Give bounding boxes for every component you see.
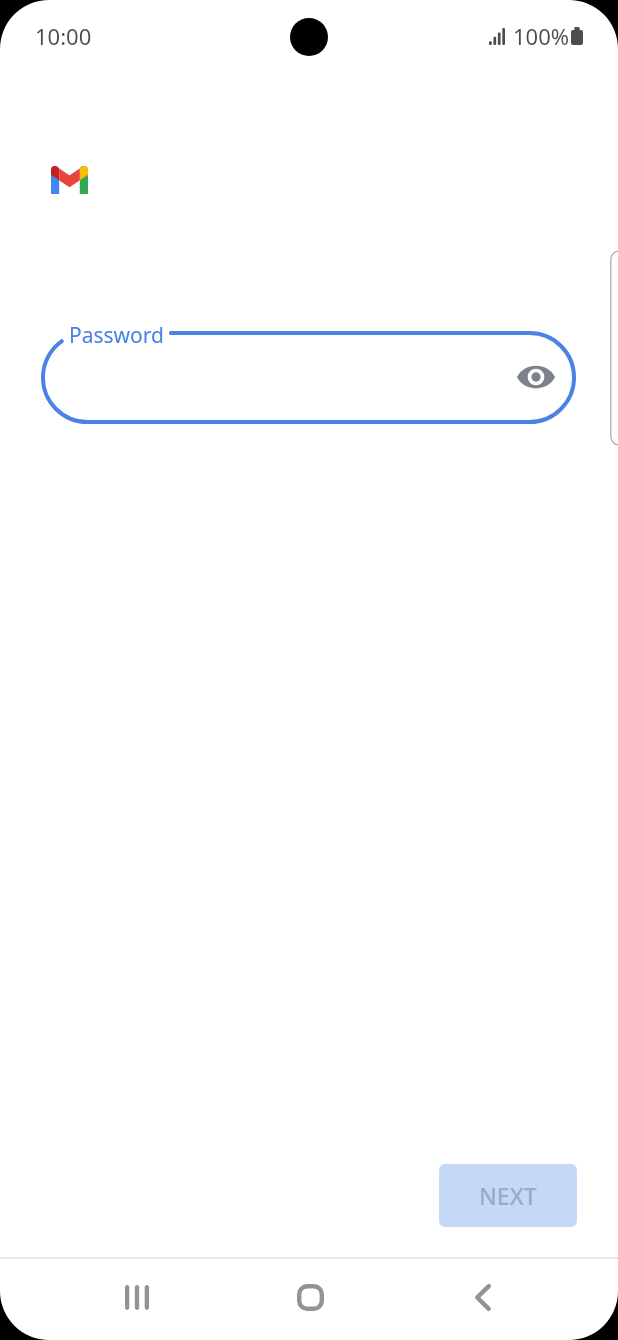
staticText: Password	[69, 321, 164, 350]
button[interactable]: Back	[443, 1257, 523, 1337]
button[interactable]: Show password	[512, 352, 560, 401]
button[interactable]: Recent apps	[97, 1257, 177, 1337]
staticText: 100%	[513, 21, 570, 51]
button[interactable]	[41, 331, 576, 424]
staticText: NEXT	[479, 1180, 537, 1211]
button[interactable]: NEXT	[439, 1164, 577, 1227]
button[interactable]: Suggestion	[610, 250, 618, 446]
staticText: 10:00	[35, 21, 92, 51]
button[interactable]: Home	[270, 1257, 350, 1337]
